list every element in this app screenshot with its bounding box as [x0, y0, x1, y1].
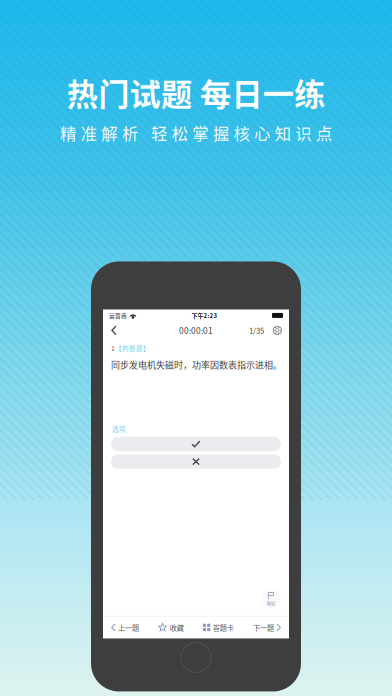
staticText: 答题卡 — [213, 622, 234, 633]
staticText: 同步发电机失磁时，功率因数表指示进相。 — [111, 358, 282, 371]
staticText: 00:00:01 — [179, 324, 213, 337]
staticText: 收藏 — [170, 622, 184, 633]
button[interactable] — [111, 454, 281, 469]
staticText: 1 — [111, 343, 115, 353]
staticText: 热门试题 每日一练 — [67, 69, 325, 115]
button[interactable]: 下一题 — [251, 618, 283, 637]
button[interactable]: Back — [105, 321, 123, 339]
button[interactable]: 1/35 — [247, 321, 266, 340]
staticText: 下午2:23 — [191, 311, 217, 320]
button[interactable] — [111, 437, 281, 451]
button[interactable]: 上一题 — [109, 618, 141, 637]
staticText: 精准解析 轻松掌握核心知识点 — [60, 121, 332, 144]
staticText: 1/35 — [249, 325, 264, 336]
staticText: 标记 — [267, 600, 275, 606]
button[interactable]: Settings — [270, 322, 287, 339]
staticText: 【判断题】 — [115, 343, 150, 353]
staticText: 上一题 — [118, 622, 139, 633]
button[interactable]: 答题卡 — [201, 618, 236, 637]
staticText: 运营商 — [109, 311, 127, 319]
staticText: 选项 — [112, 424, 126, 434]
staticText: 下一题 — [253, 622, 274, 633]
button[interactable]: 收藏 — [156, 618, 186, 637]
button[interactable]: Mark question — [261, 589, 281, 609]
